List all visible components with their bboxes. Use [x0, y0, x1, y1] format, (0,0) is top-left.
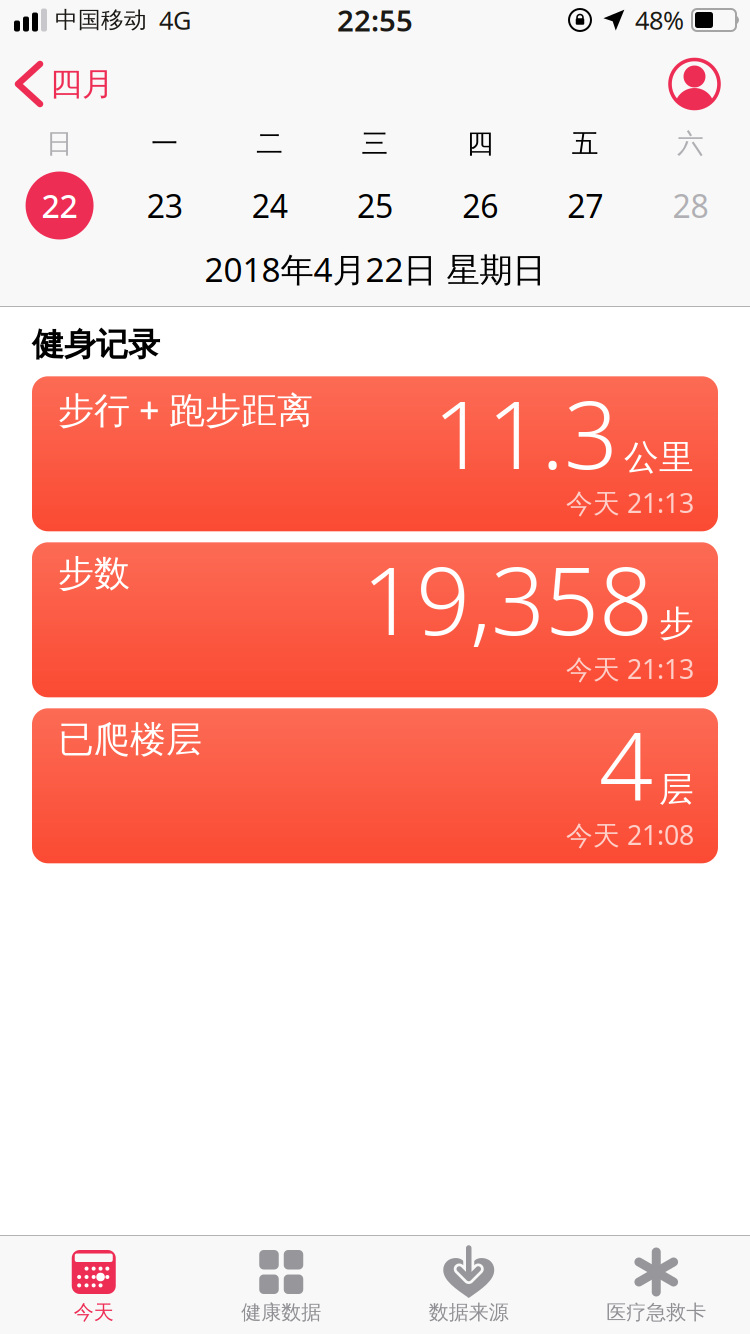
- staticText: 今天 21:13: [566, 485, 694, 520]
- staticText: 4G: [159, 3, 191, 37]
- button[interactable]: 26: [428, 184, 533, 227]
- staticText: 22: [42, 184, 78, 227]
- staticText: 今天: [74, 1300, 114, 1325]
- staticText: 19,358: [362, 535, 653, 661]
- staticText: 23: [147, 184, 183, 227]
- staticText: 健康数据: [241, 1300, 321, 1325]
- staticText: 步行 + 跑步距离: [58, 385, 313, 433]
- staticText: 11.3: [433, 369, 618, 495]
- staticText: 步数: [58, 551, 130, 595]
- button[interactable]: 今天: [0, 1250, 187, 1325]
- staticText: 2018年4月22日 星期日: [204, 247, 545, 291]
- button[interactable]: 医疗急救卡: [562, 1250, 750, 1325]
- staticText: 22:55: [337, 0, 413, 39]
- staticText: 中国移动: [55, 6, 147, 34]
- staticText: 今天 21:08: [566, 817, 694, 852]
- staticText: 二: [256, 127, 283, 160]
- staticText: 数据来源: [429, 1300, 509, 1325]
- staticText: 四月: [50, 64, 114, 104]
- button[interactable]: 数据来源: [375, 1250, 562, 1325]
- staticText: 六: [677, 127, 704, 160]
- staticText: 日: [46, 127, 73, 160]
- button[interactable]: 健康数据: [187, 1250, 375, 1325]
- staticText: 已爬楼层: [58, 717, 202, 761]
- button[interactable]: 25: [322, 184, 427, 227]
- staticText: 步: [659, 602, 694, 645]
- button[interactable]: 步数: [32, 542, 718, 697]
- staticText: 48%: [635, 3, 684, 37]
- staticText: 26: [462, 184, 498, 227]
- staticText: 一: [151, 127, 178, 160]
- button[interactable]: 已爬楼层: [32, 708, 718, 863]
- button[interactable]: 24: [217, 184, 322, 227]
- button[interactable]: 四月: [18, 64, 114, 104]
- staticText: 公里: [624, 436, 694, 479]
- staticText: 28: [672, 184, 708, 227]
- staticText: 层: [659, 768, 694, 811]
- button[interactable]: 27: [533, 184, 638, 227]
- staticText: 4: [599, 701, 653, 827]
- button[interactable]: 23: [112, 184, 217, 227]
- staticText: 健身记录: [32, 325, 160, 364]
- staticText: 25: [357, 184, 393, 227]
- button[interactable]: 28: [638, 184, 743, 227]
- staticText: 五: [572, 127, 599, 160]
- button[interactable]: [670, 59, 719, 108]
- button[interactable]: 22: [7, 171, 112, 239]
- staticText: 四: [467, 127, 494, 160]
- staticText: 24: [252, 184, 288, 227]
- staticText: 医疗急救卡: [606, 1300, 706, 1325]
- staticText: 今天 21:13: [566, 651, 694, 686]
- staticText: 27: [567, 184, 603, 227]
- button[interactable]: 步行 + 跑步距离: [32, 376, 718, 531]
- staticText: 三: [361, 127, 388, 160]
